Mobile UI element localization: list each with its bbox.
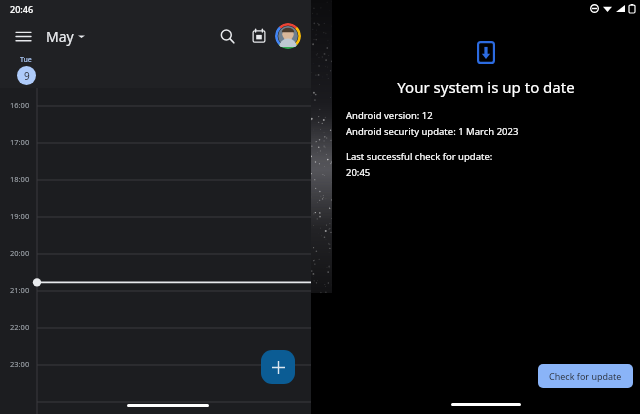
staticText: Check for update — [549, 370, 622, 382]
staticText: 20:00 — [10, 248, 30, 258]
staticText: Android version: 12 — [346, 109, 433, 122]
staticText: Android security update: 1 March 2023 — [346, 125, 519, 138]
staticText: 16:00 — [10, 100, 30, 110]
button[interactable]: May — [42, 24, 89, 49]
staticText: Tue — [20, 55, 32, 65]
staticText: Your system is up to date — [332, 77, 640, 97]
staticText: 20:46 — [10, 3, 34, 15]
staticText: 18:00 — [10, 174, 30, 184]
staticText: 19:00 — [10, 211, 30, 221]
staticText: May — [46, 27, 74, 46]
button[interactable]: Check for update — [538, 364, 633, 388]
button[interactable]: Create event — [261, 350, 295, 384]
button[interactable]: Switch view — [243, 20, 275, 52]
staticText: 23:00 — [10, 359, 30, 369]
staticText: 17:00 — [10, 137, 30, 147]
staticText: 20:45 — [346, 166, 371, 179]
button[interactable]: Account — [275, 23, 301, 49]
staticText: 22:00 — [10, 322, 30, 332]
button[interactable]: Tue — [6, 55, 46, 85]
staticText: 21:00 — [10, 285, 30, 295]
staticText: Last successful check for update: — [346, 150, 493, 163]
button[interactable]: Search — [211, 20, 243, 52]
staticText: 9 — [24, 69, 30, 83]
button[interactable]: Open navigation menu — [8, 21, 38, 51]
